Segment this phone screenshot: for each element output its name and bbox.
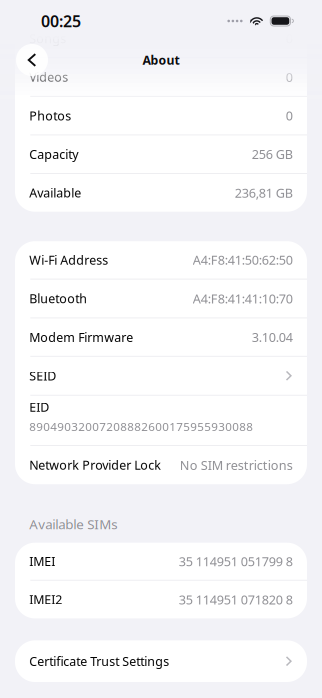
staticText: Modem Firmware bbox=[29, 329, 133, 346]
staticText: EID bbox=[29, 399, 49, 415]
staticText: Wi-Fi Address bbox=[29, 251, 108, 268]
staticText: 256 GB bbox=[252, 146, 293, 163]
staticText: 89049032007208882600175955930088 bbox=[29, 419, 253, 434]
button[interactable]: Network Provider Lock bbox=[15, 446, 307, 484]
button[interactable]: Videos bbox=[15, 58, 307, 96]
staticText: Certificate Trust Settings bbox=[29, 653, 169, 670]
staticText: 00:25 bbox=[41, 10, 81, 32]
staticText: 0 bbox=[286, 68, 293, 86]
staticText: 3.10.04 bbox=[252, 328, 293, 346]
staticText: IMEI2 bbox=[29, 591, 62, 608]
staticText: About bbox=[142, 52, 179, 68]
staticText: No SIM restrictions bbox=[180, 456, 293, 474]
staticText: 0 bbox=[286, 107, 293, 124]
button[interactable]: IMEI2 bbox=[15, 581, 307, 618]
staticText: Photos bbox=[29, 107, 71, 124]
button[interactable]: Available bbox=[15, 174, 307, 212]
staticText: 35 114951 071820 8 bbox=[179, 591, 293, 608]
button[interactable]: Photos bbox=[15, 97, 307, 134]
staticText: Capacity bbox=[29, 146, 78, 163]
staticText: 236,81 GB bbox=[235, 184, 293, 201]
button[interactable]: Back bbox=[16, 44, 48, 76]
staticText: SEID bbox=[29, 367, 56, 384]
button[interactable]: Modem Firmware bbox=[15, 318, 307, 356]
staticText: Available SIMs bbox=[29, 515, 117, 533]
staticText: A4:F8:41:41:10:70 bbox=[193, 290, 293, 307]
button[interactable]: Wi-Fi Address bbox=[15, 241, 307, 279]
staticText: Bluetooth bbox=[29, 290, 87, 307]
button[interactable]: Certificate Trust Settings bbox=[15, 640, 307, 682]
staticText: Network Provider Lock bbox=[29, 457, 161, 473]
button[interactable]: IMEI bbox=[15, 543, 307, 580]
staticText: 35 114951 051799 8 bbox=[179, 553, 293, 570]
staticText: Videos bbox=[29, 69, 68, 85]
button[interactable]: EID bbox=[15, 396, 307, 445]
button[interactable]: Bluetooth bbox=[15, 279, 307, 317]
staticText: A4:F8:41:50:62:50 bbox=[193, 251, 293, 269]
button[interactable]: Capacity bbox=[15, 135, 307, 173]
button[interactable]: SEID bbox=[15, 357, 307, 395]
staticText: IMEI bbox=[29, 553, 55, 570]
staticText: Available bbox=[29, 184, 81, 201]
button[interactable]: Songs bbox=[15, 19, 307, 57]
